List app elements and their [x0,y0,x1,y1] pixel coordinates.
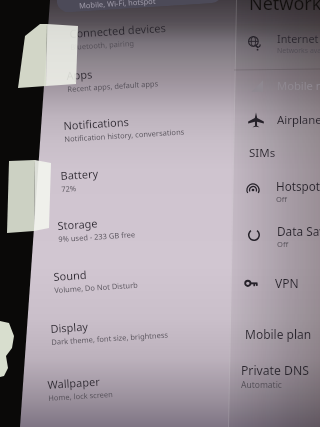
staticText: Bluetooth, pairing [70,38,134,52]
staticText: Mobile, Wi-Fi, hotspot [79,0,156,11]
staticText: Notifications [63,114,130,133]
staticText: VPN [275,275,299,291]
staticText: Wallpaper [47,374,101,392]
staticText: Dark theme, font size, brightness [51,330,168,347]
button[interactable]: Storage [57,218,247,244]
staticText: Hotspot [276,178,320,194]
staticText: Display [50,319,89,336]
button[interactable]: VPN [234,267,320,299]
staticText: Connected devices [69,20,167,41]
staticText: Notification history, conversations [64,126,185,144]
button[interactable]: Connected devices [69,26,259,52]
staticText: Automatic [241,379,282,391]
button[interactable]: Data Saver [234,219,320,251]
staticText: Recent apps, default apps [67,78,158,94]
button[interactable]: Sound [53,269,243,295]
staticText: Battery [60,166,99,183]
staticText: Private DNS [241,362,309,379]
button[interactable]: Hotspot [234,174,320,206]
staticText: Volume, Do Not Disturb [54,280,138,295]
button[interactable]: Private DNS [241,362,309,391]
button[interactable]: Notifications [63,118,253,144]
button[interactable]: Airplane mode [234,104,320,136]
staticText: SIMs [249,145,276,161]
staticText: 9% used - 233 GB free [58,229,135,244]
staticText: Data Saver [277,223,320,239]
staticText: Sound [53,267,88,284]
button[interactable]: Wallpaper [47,377,237,403]
button[interactable]: Internet [234,27,320,59]
staticText: Off [276,194,287,204]
button[interactable]: Mobile network [234,70,320,102]
button[interactable]: Apps [66,68,256,94]
button[interactable]: Mobile, Wi-Fi, hotspot [56,0,223,13]
button[interactable]: Mobile plan [245,326,312,342]
button[interactable]: SIMs [249,145,276,161]
staticText: Internet [277,31,319,46]
staticText: Mobile plan [245,326,312,342]
staticText: Mobile network [277,78,320,93]
button[interactable]: Battery [60,168,250,194]
staticText: Apps [66,66,93,83]
staticText: Storage [57,215,99,233]
staticText: Network & internet [249,0,320,16]
button[interactable]: Network & internet [249,0,320,16]
staticText: Networks available [277,46,320,55]
staticText: Home, lock screen [48,389,113,403]
button[interactable]: Display [50,321,240,347]
staticText: Airplane mode [277,112,320,128]
staticText: Off [277,239,289,249]
staticText: 72% [61,183,77,194]
